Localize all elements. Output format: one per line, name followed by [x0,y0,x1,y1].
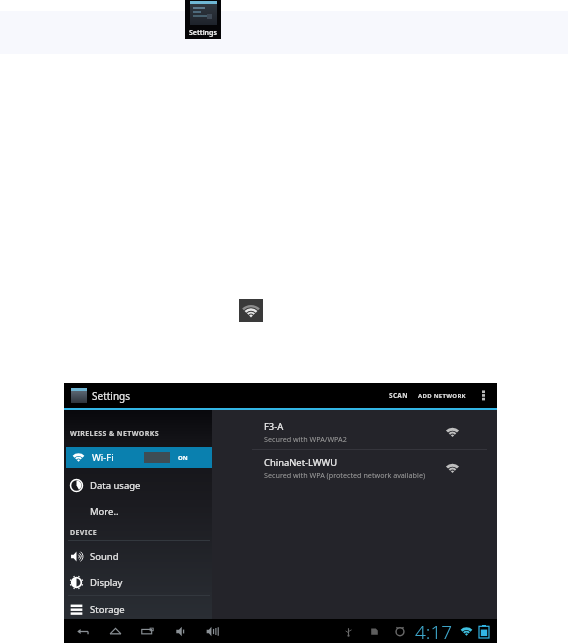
button[interactable]: Settings [71,383,131,408]
button[interactable]: Settings [185,0,221,39]
staticText: Storage [90,603,125,616]
button[interactable]: Sound [64,543,212,569]
button[interactable]: Home [104,620,126,642]
button[interactable]: Wi-Fi [66,447,214,468]
staticText: Sound [90,550,119,563]
button[interactable]: Status bar, open quick settings [343,619,489,643]
button[interactable]: Data usage [64,472,212,498]
staticText: ChinaNet-LWWU [264,456,338,469]
staticText: DEVICE [70,528,98,538]
staticText: F3-A [264,420,284,433]
staticText: Settings [189,28,217,38]
button[interactable]: ChinaNet-LWWU [212,451,497,485]
button[interactable]: More options [475,383,492,408]
staticText: WIRELESS & NETWORKS [70,429,160,439]
button[interactable]: Volume up [201,620,223,642]
button[interactable]: Back [72,620,94,642]
staticText: Data usage [90,479,141,492]
button[interactable]: ADD NETWORK [415,383,469,408]
button[interactable]: Storage [64,596,212,622]
staticText: Secured with WPA/WPA2 [264,434,347,444]
staticText: Settings [92,389,131,403]
button[interactable]: SCAN [386,383,411,408]
staticText: Secured with WPA (protected network avai… [264,470,426,480]
staticText: ADD NETWORK [418,392,466,400]
staticText: 4:17 [415,619,453,643]
staticText: More.. [90,505,119,518]
button[interactable]: Volume down [170,620,192,642]
button[interactable]: Wi-Fi [239,299,263,322]
staticText: ON [178,454,188,462]
staticText: Wi-Fi [92,451,114,464]
staticText: Display [90,576,123,589]
staticText: SCAN [389,391,408,400]
button[interactable]: More.. [64,498,212,524]
button[interactable]: F3-A [212,415,497,449]
button[interactable]: Display [64,569,212,595]
button[interactable]: Recents [136,620,158,642]
